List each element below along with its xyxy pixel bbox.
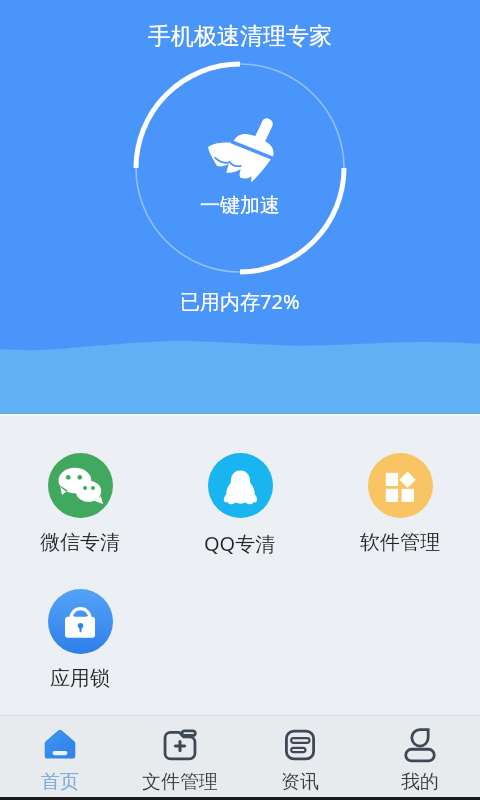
staticText: 微信专清 — [40, 530, 120, 555]
staticText: 软件管理 — [360, 530, 440, 555]
button[interactable]: QQ专清 — [160, 453, 320, 557]
staticText: 我的 — [401, 770, 439, 794]
staticText: 文件管理 — [142, 770, 218, 794]
staticText: 资讯 — [281, 770, 319, 794]
staticText: 已用内存72% — [180, 288, 300, 315]
button[interactable]: 微信专清 — [0, 453, 160, 555]
button[interactable]: 资讯 — [240, 716, 360, 794]
button[interactable]: 文件管理 — [120, 716, 240, 794]
staticText: QQ专清 — [204, 530, 276, 557]
staticText: 应用锁 — [50, 666, 110, 691]
staticText: 手机极速清理专家 — [0, 22, 480, 51]
button[interactable]: 一键加速 — [136, 64, 344, 272]
button[interactable]: 软件管理 — [320, 453, 480, 555]
button[interactable]: 我的 — [360, 716, 480, 794]
staticText: 一键加速 — [200, 193, 280, 218]
button[interactable]: 应用锁 — [0, 589, 160, 691]
button[interactable]: 首页 — [0, 716, 120, 794]
staticText: 首页 — [41, 770, 79, 794]
